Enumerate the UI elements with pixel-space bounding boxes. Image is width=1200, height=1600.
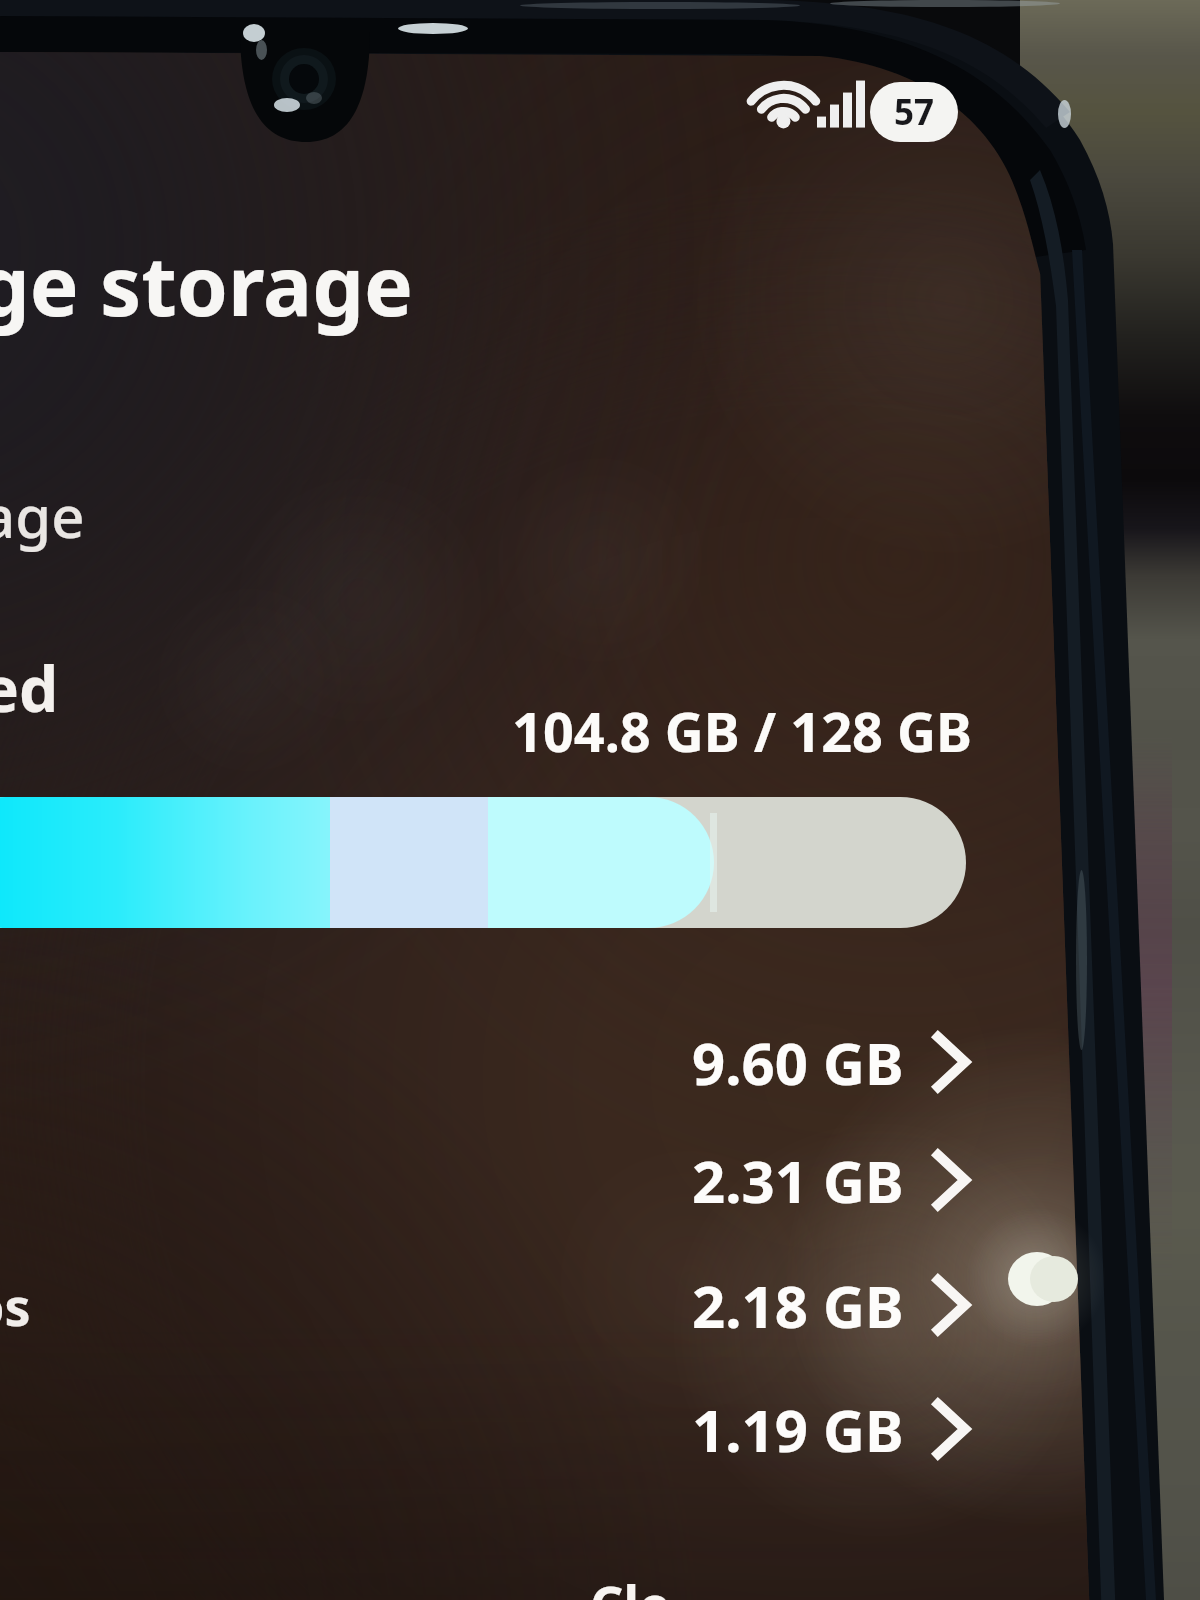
staticText: ed: [0, 646, 59, 730]
staticText: 2.31 GB: [692, 1141, 904, 1220]
staticText: os: [0, 1270, 31, 1341]
other: Battery 57 percent: [870, 82, 958, 142]
button[interactable]: 2.31 GB: [0, 1124, 1014, 1236]
staticText: 9.60 GB: [692, 1023, 904, 1102]
button[interactable]: Total storage: [0, 444, 420, 554]
button[interactable]: 9.60 GB: [0, 1006, 1014, 1118]
staticText: 1.19 GB: [692, 1390, 904, 1469]
button[interactable]: Used storage: [0, 618, 420, 728]
other: Wi-Fi: [746, 80, 818, 138]
button[interactable]: Manage storage: [0, 196, 620, 346]
staticText: 57: [894, 88, 935, 136]
button[interactable]: 1.19 GB: [0, 1373, 1014, 1485]
other: Mobile signal: [812, 80, 876, 138]
button[interactable]: os: [0, 1249, 1014, 1361]
staticText: 2.18 GB: [692, 1266, 904, 1345]
staticText: Cle: [590, 1568, 670, 1600]
staticText: 104.8 GB / 128 GB: [512, 694, 972, 768]
staticText: ge storage: [0, 228, 414, 340]
staticText: age: [0, 476, 85, 555]
